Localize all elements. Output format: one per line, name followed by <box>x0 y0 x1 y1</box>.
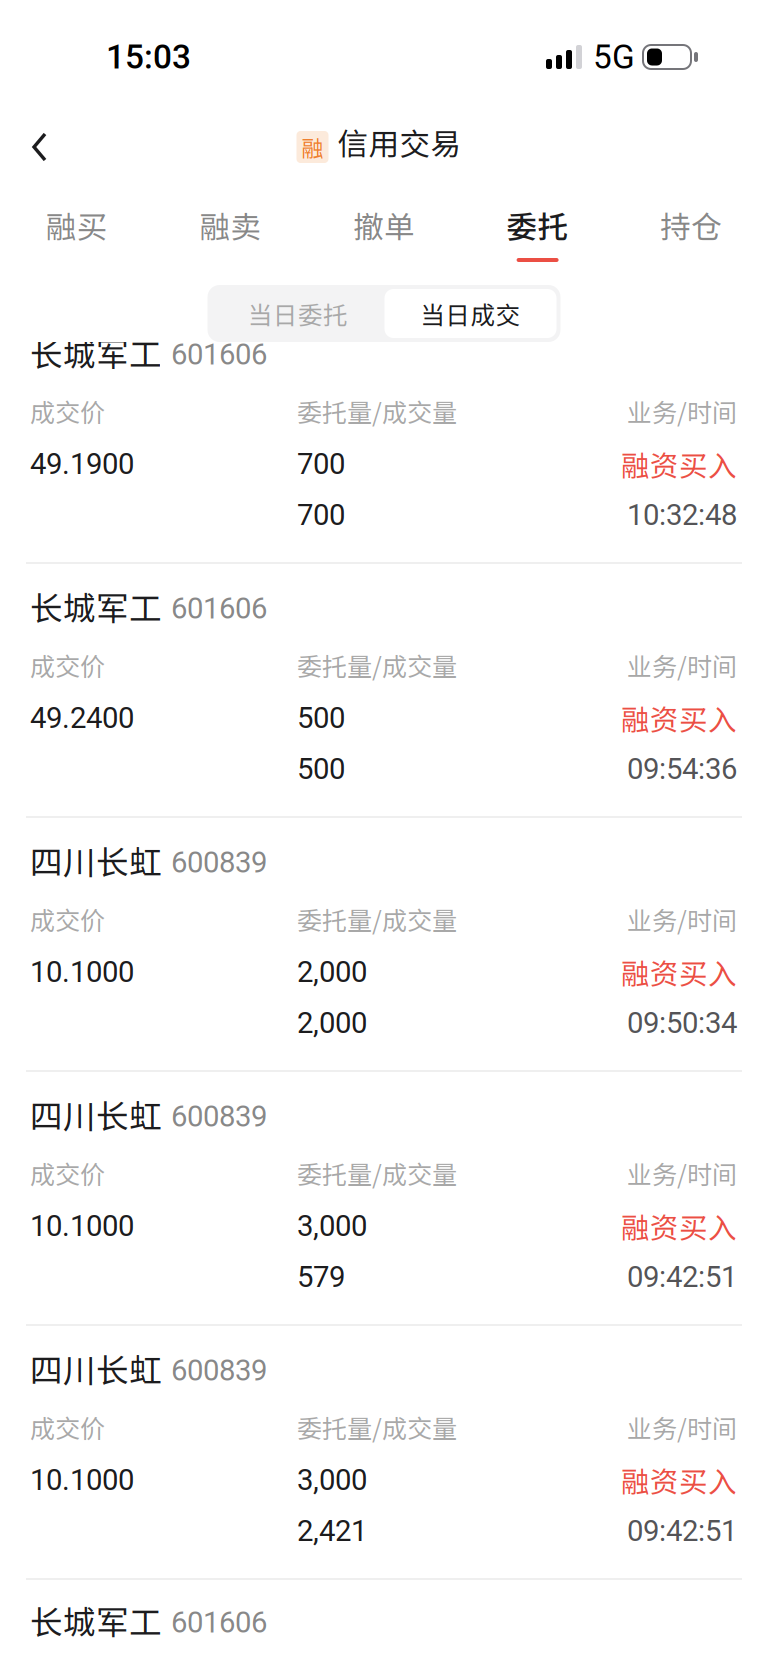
staticText: 融买 <box>46 203 108 247</box>
staticText: 601606 <box>171 337 267 372</box>
staticText: 600839 <box>171 1099 267 1134</box>
staticText: 700 <box>297 498 345 532</box>
staticText: 成交价 <box>30 393 105 429</box>
staticText: 融卖 <box>199 203 261 247</box>
staticText: 当日委托 <box>248 296 348 331</box>
staticText: 10.1000 <box>30 1209 134 1243</box>
staticText: 撤单 <box>353 203 415 247</box>
staticText: 长城军工 <box>30 1596 162 1643</box>
staticText: 融资买入 <box>621 1205 737 1247</box>
staticText: 579 <box>297 1260 345 1294</box>
button[interactable]: 委托 <box>461 180 614 285</box>
staticText: 业务/时间 <box>627 1409 737 1445</box>
staticText: 业务/时间 <box>627 901 737 937</box>
staticText: 信用交易 <box>337 120 461 164</box>
staticText: 委托量/成交量 <box>297 393 457 429</box>
staticText: 10.1000 <box>30 1463 134 1497</box>
staticText: 2,000 <box>297 955 367 989</box>
button[interactable]: 撤单 <box>307 180 461 285</box>
staticText: 15:03 <box>106 37 191 77</box>
button[interactable]: 当日成交 <box>384 289 556 338</box>
staticText: 49.1900 <box>30 447 134 481</box>
button[interactable]: 持仓 <box>614 180 768 285</box>
staticText: 3,000 <box>297 1209 367 1243</box>
staticText: 成交价 <box>30 1409 105 1445</box>
staticText: 600839 <box>171 1353 267 1388</box>
staticText: 四川长虹 <box>30 836 162 883</box>
staticText: 5G <box>593 37 635 77</box>
staticText: 700 <box>297 447 345 481</box>
staticText: 500 <box>297 701 345 735</box>
staticText: 10:32:48 <box>627 498 737 532</box>
staticText: 四川长虹 <box>30 1344 162 1391</box>
button[interactable]: 返回 <box>0 110 71 174</box>
staticText: 2,421 <box>297 1514 367 1548</box>
staticText: 当日成交 <box>420 296 520 331</box>
staticText: 长城军工 <box>30 582 162 629</box>
staticText: 融资买入 <box>621 697 737 739</box>
staticText: 业务/时间 <box>627 393 737 429</box>
staticText: 09:42:51 <box>627 1260 737 1294</box>
staticText: 09:42:51 <box>627 1514 737 1548</box>
staticText: 成交价 <box>30 647 105 683</box>
staticText: 委托 <box>507 203 569 247</box>
staticText: 融资买入 <box>621 951 737 993</box>
staticText: 600839 <box>171 845 267 880</box>
staticText: 601606 <box>171 591 267 626</box>
button[interactable]: 融买 <box>0 180 154 285</box>
staticText: 成交价 <box>30 901 105 937</box>
staticText: 业务/时间 <box>627 647 737 683</box>
staticText: 500 <box>297 752 345 786</box>
staticText: 2,000 <box>297 1006 367 1040</box>
staticText: 成交价 <box>30 1155 105 1191</box>
staticText: 10.1000 <box>30 955 134 989</box>
button[interactable]: 融卖 <box>154 180 307 285</box>
staticText: 融 <box>301 131 323 163</box>
staticText: 委托量/成交量 <box>297 1409 457 1445</box>
staticText: 49.2400 <box>30 701 134 735</box>
staticText: 四川长虹 <box>30 1090 162 1137</box>
staticText: 3,000 <box>297 1463 367 1497</box>
staticText: 长城军工 <box>30 328 162 375</box>
staticText: 持仓 <box>660 203 722 247</box>
staticText: 601606 <box>171 1605 267 1640</box>
staticText: 委托量/成交量 <box>297 1155 457 1191</box>
staticText: 融资买入 <box>621 443 737 485</box>
staticText: 委托量/成交量 <box>297 647 457 683</box>
staticText: 融资买入 <box>621 1459 737 1501</box>
staticText: 09:50:34 <box>627 1006 737 1040</box>
staticText: 委托量/成交量 <box>297 901 457 937</box>
button[interactable]: 当日委托 <box>211 289 384 338</box>
staticText: 09:54:36 <box>627 752 737 786</box>
staticText: 业务/时间 <box>627 1155 737 1191</box>
